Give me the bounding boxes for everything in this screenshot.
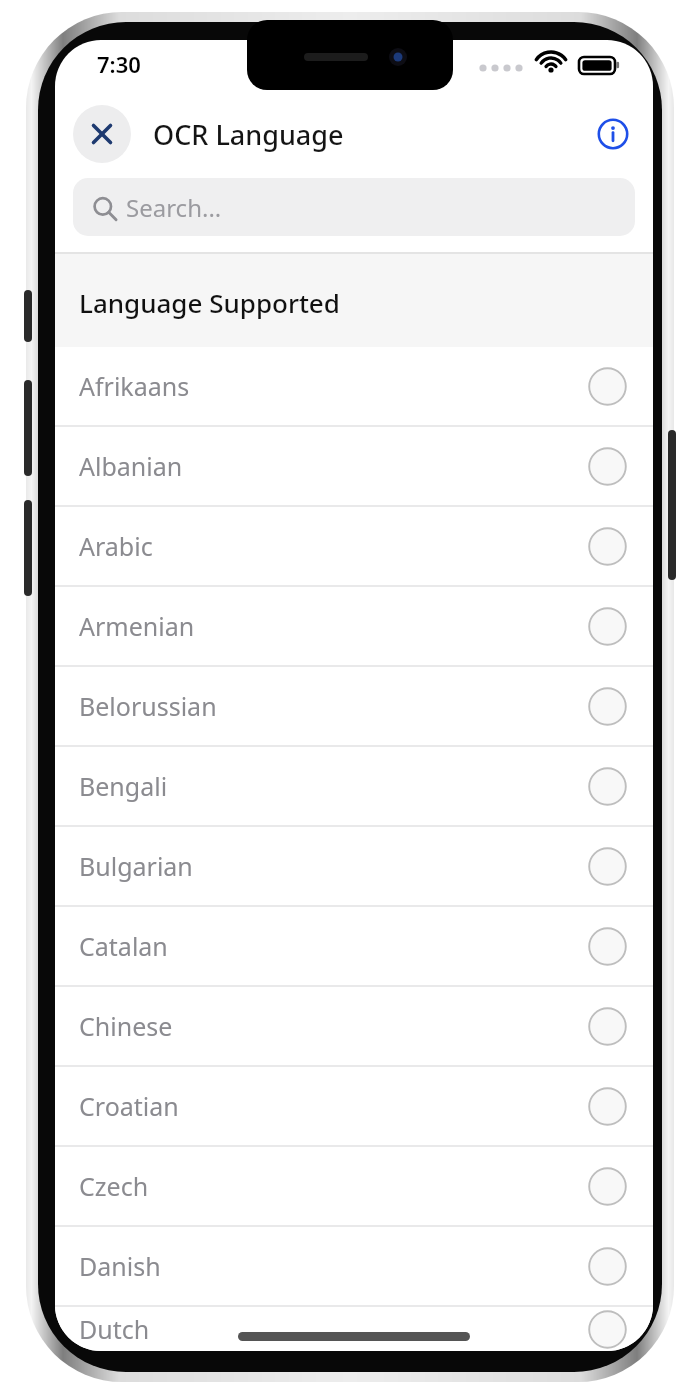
button[interactable]: Close (73, 105, 131, 163)
staticText: Dutch (79, 1312, 150, 1346)
staticText: Danish (79, 1249, 161, 1283)
staticText: Search... (126, 191, 222, 224)
staticText: Czech (79, 1169, 149, 1203)
button[interactable]: Arabic (55, 507, 653, 585)
staticText: 7:30 (97, 49, 141, 79)
staticText: Croatian (79, 1089, 179, 1123)
button[interactable]: Information (591, 112, 635, 156)
button[interactable]: Catalan (55, 907, 653, 985)
button[interactable]: Bengali (55, 747, 653, 825)
button[interactable]: Belorussian (55, 667, 653, 745)
staticText: Armenian (79, 609, 195, 643)
staticText: Belorussian (79, 689, 217, 723)
staticText: Albanian (79, 449, 183, 483)
staticText: Arabic (79, 529, 153, 563)
staticText: Bulgarian (79, 849, 193, 883)
staticText: Chinese (79, 1009, 173, 1043)
staticText: Catalan (79, 929, 168, 963)
staticText: OCR Language (153, 116, 344, 153)
button[interactable]: Search... (73, 178, 635, 236)
button[interactable]: Bulgarian (55, 827, 653, 905)
button[interactable]: Afrikaans (55, 347, 653, 425)
staticText: Bengali (79, 769, 168, 803)
button[interactable]: Chinese (55, 987, 653, 1065)
button[interactable]: Croatian (55, 1067, 653, 1145)
button[interactable]: Danish (55, 1227, 653, 1305)
button[interactable]: Armenian (55, 587, 653, 665)
button[interactable]: Dutch (55, 1307, 653, 1351)
staticText: Language Supported (79, 285, 340, 320)
staticText: Afrikaans (79, 369, 190, 403)
button[interactable]: Albanian (55, 427, 653, 505)
button[interactable]: Czech (55, 1147, 653, 1225)
